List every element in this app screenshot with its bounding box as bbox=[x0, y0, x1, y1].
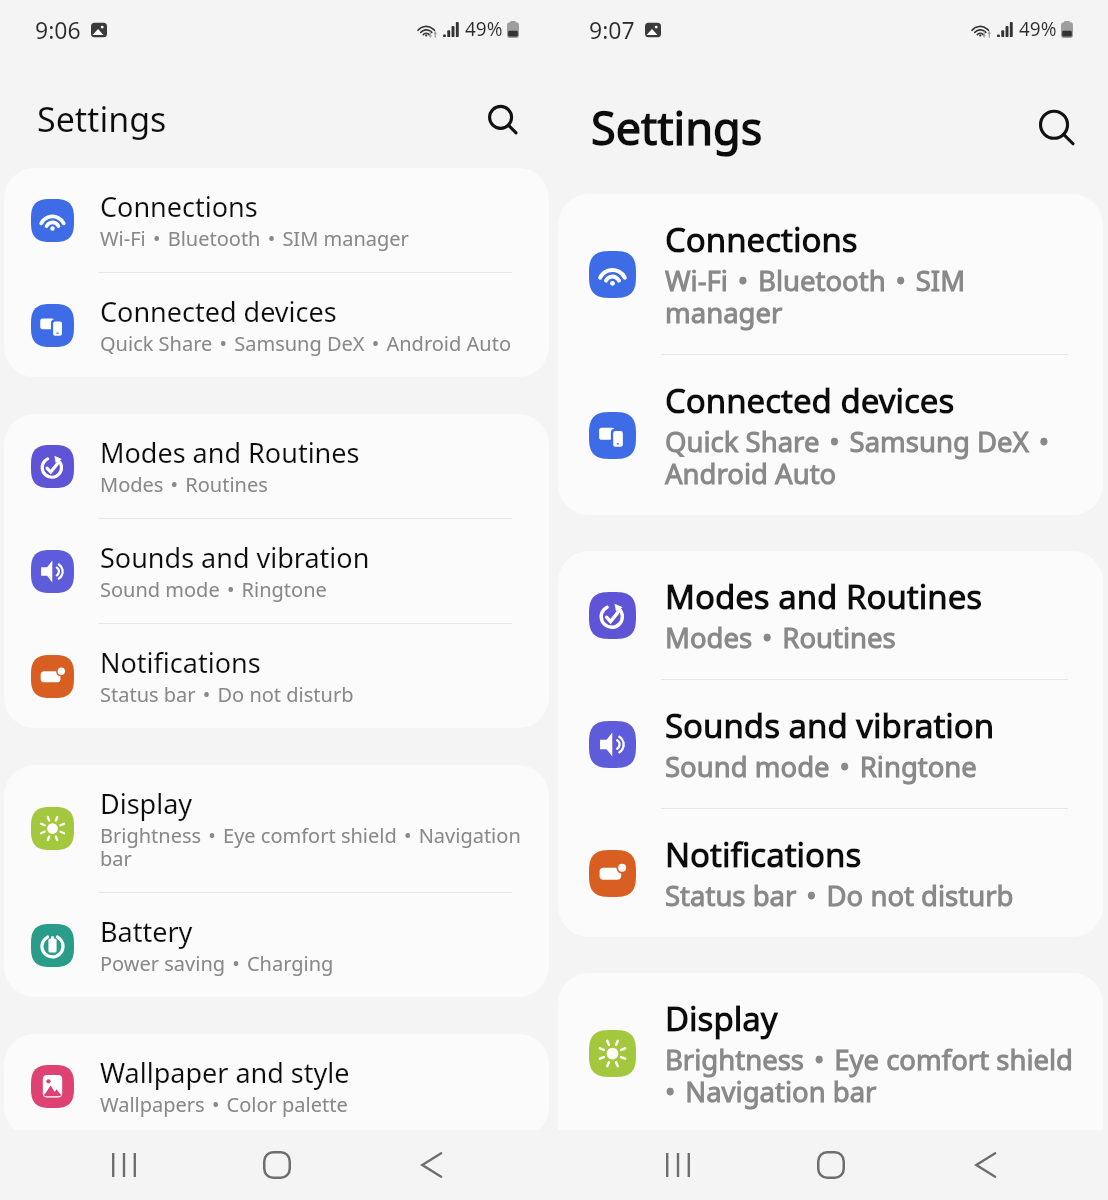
staticText: Brightness • Eye comfort shield • Naviga… bbox=[100, 822, 525, 872]
button[interactable]: Back bbox=[401, 1135, 461, 1195]
button[interactable]: Battery bbox=[4, 893, 549, 997]
staticText: Modes • Routines bbox=[100, 471, 268, 498]
staticText: Connections bbox=[100, 188, 258, 225]
staticText: Display bbox=[665, 996, 778, 1041]
button[interactable]: Wallpaper and style bbox=[4, 1034, 549, 1138]
button[interactable]: Connections bbox=[4, 168, 549, 272]
staticText: Settings bbox=[37, 96, 167, 142]
staticText: Sound mode • Ringtone bbox=[100, 576, 327, 603]
staticText: Sounds and vibration bbox=[665, 703, 995, 748]
staticText: Power saving • Charging bbox=[100, 950, 334, 977]
button[interactable]: Recents bbox=[94, 1135, 154, 1195]
button[interactable]: Display bbox=[4, 765, 549, 892]
staticText: Wallpapers • Color palette bbox=[100, 1091, 348, 1118]
staticText: Display bbox=[100, 785, 193, 822]
staticText: Modes and Routines bbox=[665, 574, 983, 619]
button[interactable]: Recents bbox=[648, 1135, 708, 1195]
staticText: Status bar • Do not disturb bbox=[100, 681, 354, 708]
staticText: Sound mode • Ringtone bbox=[665, 748, 977, 785]
staticText: Notifications bbox=[100, 644, 261, 681]
staticText: 49% bbox=[465, 16, 503, 42]
button[interactable]: Home bbox=[801, 1135, 861, 1195]
button[interactable]: Modes and Routines bbox=[558, 551, 1103, 679]
button[interactable]: Sounds and vibration bbox=[558, 680, 1103, 808]
staticText: 49% bbox=[1019, 16, 1057, 42]
staticText: Wi-Fi • Bluetooth • SIM manager bbox=[665, 262, 1079, 331]
button[interactable]: Home bbox=[247, 1135, 307, 1195]
button[interactable]: Modes and Routines bbox=[4, 414, 549, 518]
staticText: Wallpaper and style bbox=[100, 1054, 350, 1091]
button[interactable]: Connected devices bbox=[4, 273, 549, 377]
staticText: Modes • Routines bbox=[665, 619, 896, 656]
staticText: Modes and Routines bbox=[100, 434, 360, 471]
staticText: Connected devices bbox=[665, 378, 955, 423]
button[interactable]: Notifications bbox=[558, 809, 1103, 937]
staticText: Brightness • Eye comfort shield • Naviga… bbox=[665, 1041, 1073, 1110]
button[interactable]: Display bbox=[558, 973, 1103, 1133]
staticText: Notifications bbox=[665, 832, 862, 877]
button[interactable]: Search bbox=[1030, 101, 1084, 155]
staticText: 9:06 bbox=[35, 14, 81, 45]
button[interactable]: Search bbox=[476, 93, 530, 147]
staticText: Quick Share • Samsung DeX • Android Auto bbox=[100, 330, 511, 357]
button[interactable]: Notifications bbox=[4, 624, 549, 728]
button[interactable]: Connected devices bbox=[558, 355, 1103, 515]
button[interactable]: Connections bbox=[558, 194, 1103, 354]
staticText: Status bar • Do not disturb bbox=[665, 877, 1014, 914]
staticText: Battery bbox=[100, 913, 193, 950]
staticText: Quick Share • Samsung DeX • Android Auto bbox=[665, 423, 1079, 492]
staticText: Settings bbox=[591, 97, 763, 158]
staticText: Sounds and vibration bbox=[100, 539, 370, 576]
staticText: Connections bbox=[665, 217, 858, 262]
button[interactable]: Back bbox=[955, 1135, 1015, 1195]
staticText: Battery bbox=[665, 1157, 778, 1177]
button[interactable]: Sounds and vibration bbox=[4, 519, 549, 623]
button[interactable]: Battery bbox=[558, 1134, 1103, 1200]
staticText: Connected devices bbox=[100, 293, 337, 330]
staticText: 9:07 bbox=[589, 14, 635, 45]
staticText: Wi-Fi • Bluetooth • SIM manager bbox=[100, 225, 409, 252]
